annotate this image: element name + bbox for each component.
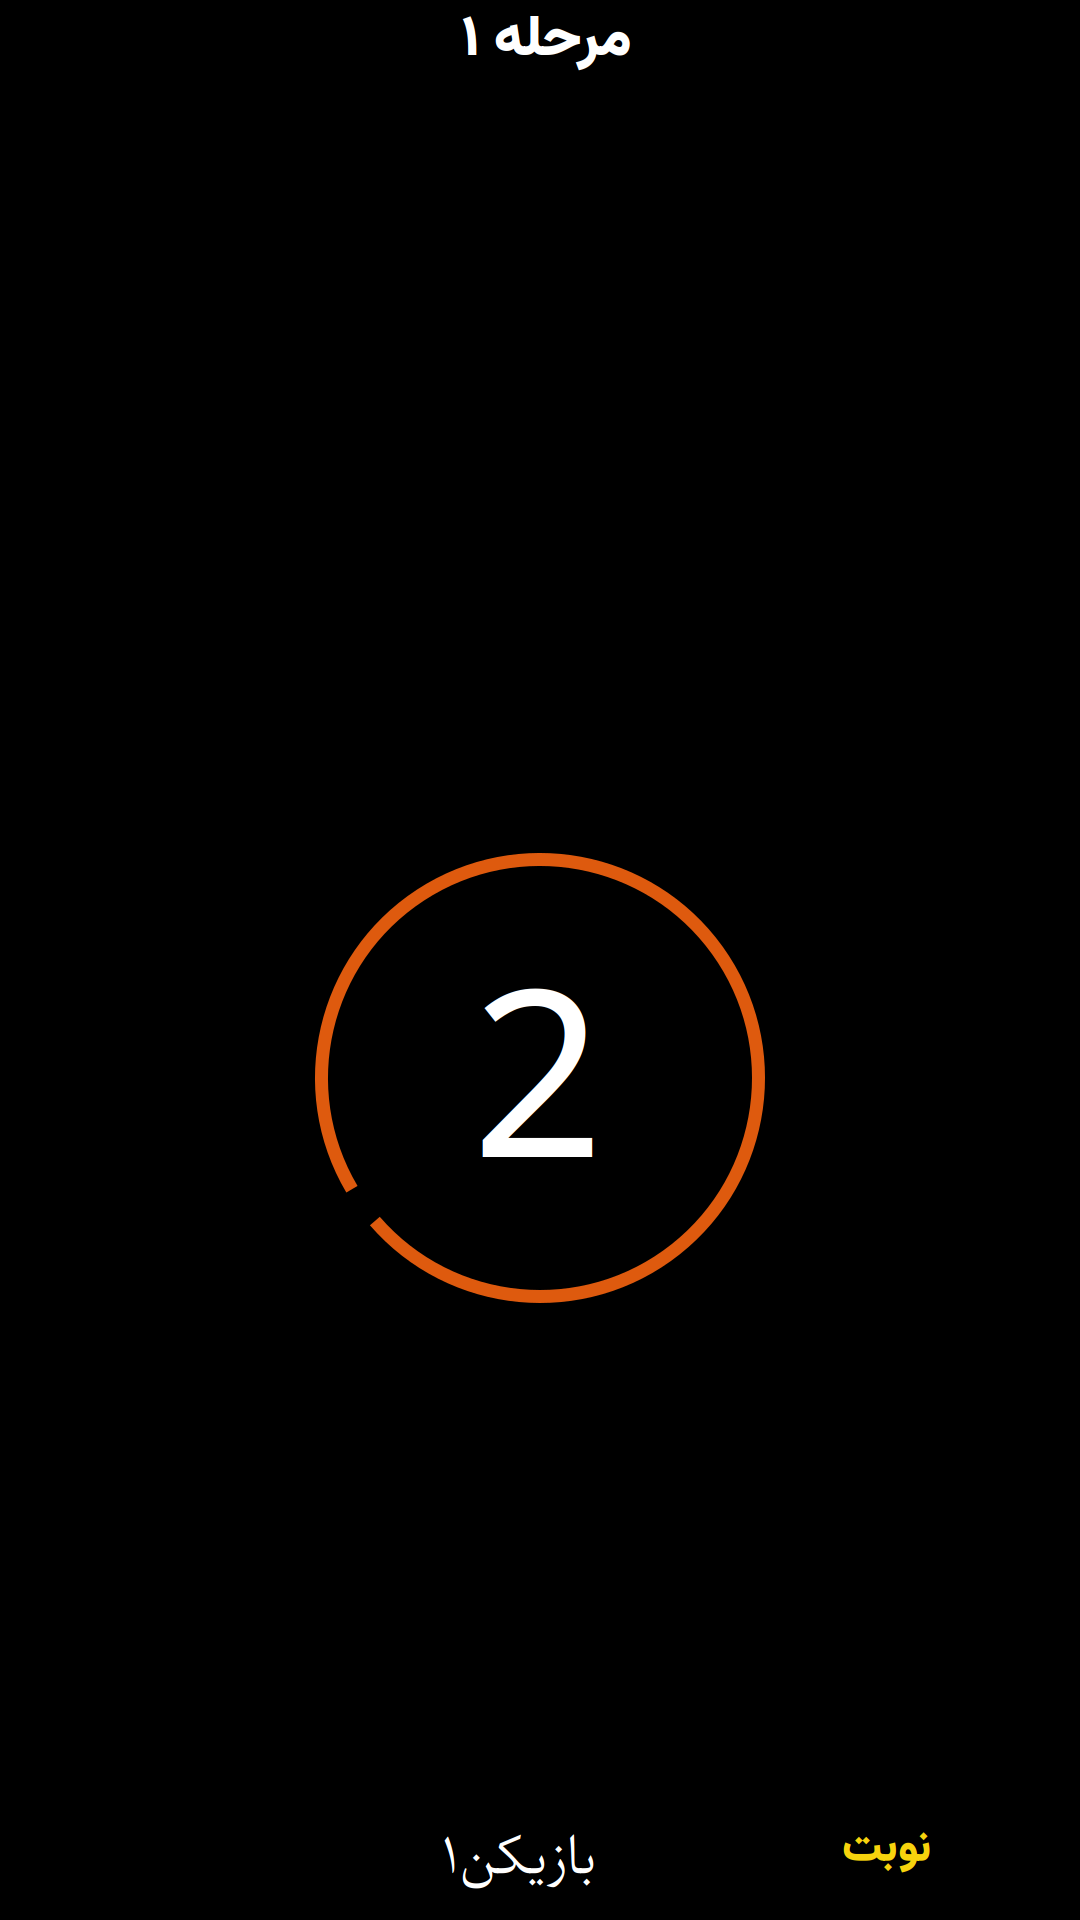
button[interactable]: Turn timer, 2 seconds left — [315, 853, 765, 1303]
staticText: بازیکن۱ — [440, 1806, 595, 1904]
staticText: مرحله ۱ — [461, 0, 631, 86]
staticText: نوبت — [841, 1816, 930, 1884]
staticText: 2 — [471, 913, 604, 1221]
